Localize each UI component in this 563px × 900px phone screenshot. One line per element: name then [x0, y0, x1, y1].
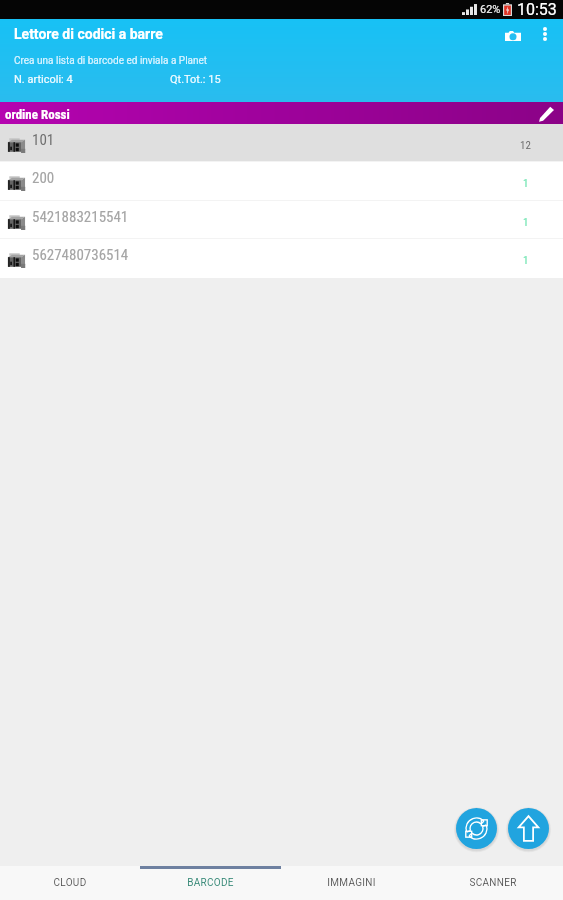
- button[interactable]: 5627480736514: [0, 239, 563, 278]
- staticText: CLOUD: [53, 877, 87, 889]
- staticText: Qt.Tot.: 15: [170, 73, 221, 86]
- staticText: 1: [523, 177, 529, 190]
- staticText: 10:53: [517, 0, 557, 19]
- staticText: 101: [32, 131, 55, 149]
- button[interactable]: 200: [0, 162, 563, 201]
- staticText: 5421883215541: [32, 208, 129, 226]
- button[interactable]: Sync: [456, 808, 497, 849]
- staticText: 200: [32, 169, 55, 187]
- button[interactable]: ordine Rossi: [0, 102, 563, 124]
- staticText: BARCODE: [187, 877, 234, 889]
- staticText: 12: [520, 139, 531, 152]
- staticText: 1: [523, 254, 529, 267]
- staticText: 5627480736514: [32, 246, 129, 264]
- staticText: Crea una lista di barcode ed inviala a P…: [14, 55, 208, 67]
- staticText: ordine Rossi: [5, 107, 70, 122]
- button[interactable]: Camera: [494, 16, 531, 54]
- button[interactable]: SCANNER: [422, 866, 563, 900]
- button[interactable]: More options: [526, 15, 563, 53]
- button[interactable]: Edit: [535, 102, 557, 124]
- staticText: 62%: [480, 3, 501, 16]
- button[interactable]: CLOUD: [0, 866, 140, 900]
- staticText: SCANNER: [469, 877, 517, 889]
- button[interactable]: BARCODE: [140, 866, 281, 900]
- button[interactable]: Upload: [508, 808, 549, 849]
- button[interactable]: IMMAGINI: [281, 866, 422, 900]
- staticText: Lettore di codici a barre: [14, 26, 163, 42]
- staticText: 1: [523, 216, 529, 229]
- button[interactable]: 5421883215541: [0, 201, 563, 239]
- button[interactable]: 101: [0, 124, 563, 162]
- staticText: N. articoli: 4: [14, 73, 73, 86]
- staticText: IMMAGINI: [327, 877, 376, 889]
